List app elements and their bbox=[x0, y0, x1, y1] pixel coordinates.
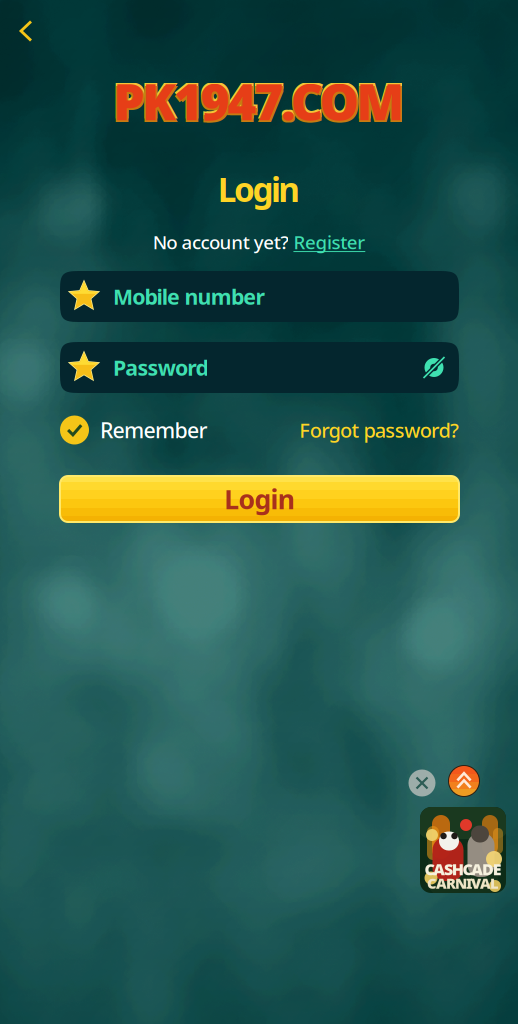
button[interactable]: Back bbox=[4, 9, 48, 53]
staticText: No account yet? bbox=[153, 230, 288, 254]
staticText: PK1947.COM bbox=[115, 70, 406, 135]
staticText: PK1947.COM bbox=[112, 67, 403, 132]
staticText: Login bbox=[218, 167, 300, 211]
staticText: PK1947.COM bbox=[112, 70, 403, 135]
button[interactable]: Register bbox=[293, 230, 365, 254]
button[interactable]: Cashcade Carnival promotion bbox=[420, 807, 506, 893]
staticText: CARNIVAL bbox=[427, 873, 499, 893]
staticText: Password bbox=[113, 353, 208, 382]
button[interactable]: Expand promotions bbox=[448, 765, 480, 797]
button[interactable]: Login bbox=[60, 476, 459, 522]
button[interactable]: Close bbox=[408, 769, 435, 796]
staticText: Remember bbox=[100, 416, 207, 444]
button[interactable]: Remember bbox=[60, 415, 207, 444]
staticText: Forgot password? bbox=[299, 417, 459, 443]
button[interactable]: Forgot password? bbox=[299, 417, 459, 443]
staticText: Mobile number bbox=[113, 282, 265, 311]
staticText: PK1947.COM bbox=[115, 67, 406, 132]
staticText: CASHCADE bbox=[424, 858, 502, 880]
staticText: Register bbox=[293, 230, 365, 254]
staticText: PK1947.COM bbox=[113, 68, 405, 134]
staticText: Login bbox=[224, 481, 295, 517]
